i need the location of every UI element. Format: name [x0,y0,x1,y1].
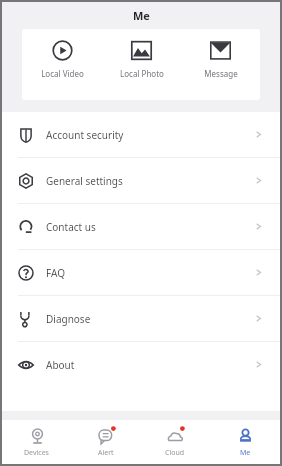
staticText: Local Photo [120,68,164,79]
other: Open General settings [253,175,264,186]
staticText: Cloud [165,448,185,458]
button[interactable]: Message [181,40,260,100]
staticText: Alert [98,448,114,458]
button[interactable]: General settings [2,158,280,203]
button[interactable]: Me [210,420,280,464]
staticText: Me [240,448,251,458]
staticText: Message [204,68,238,79]
button[interactable]: Local Photo [102,40,181,100]
staticText: Contact us [46,220,96,234]
staticText: Diagnose [46,312,91,326]
button[interactable]: Devices [2,420,71,464]
staticText: General settings [46,174,123,188]
staticText: Account security [46,128,124,142]
button[interactable]: Diagnose [2,296,280,341]
staticText: FAQ [46,266,65,280]
other: Open FAQ [253,267,264,278]
other: Open About [253,359,264,370]
staticText: Me [133,8,150,23]
other: Open Contact us [253,221,264,232]
button[interactable]: Local Video [22,40,102,100]
button[interactable]: Alert [71,420,140,464]
staticText: Devices [24,448,49,458]
staticText: About [46,358,75,372]
button[interactable]: About [2,342,280,387]
other: Open Diagnose [253,313,264,324]
button[interactable]: Account security [2,112,280,157]
button[interactable]: Contact us [2,204,280,249]
button[interactable]: Cloud [140,420,210,464]
staticText: Local Video [41,68,84,79]
other: Open Account security [253,129,264,140]
button[interactable]: FAQ [2,250,280,295]
